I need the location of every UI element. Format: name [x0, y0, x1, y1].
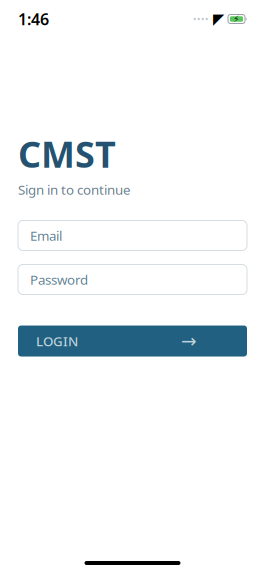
- staticText: ◤: [213, 11, 224, 27]
- staticText: 1:46: [18, 8, 49, 30]
- button[interactable]: Email: [18, 220, 247, 250]
- staticText: ⚡︎: [233, 14, 240, 24]
- button[interactable]: Password: [18, 264, 247, 294]
- staticText: CMST: [18, 130, 116, 178]
- staticText: Password: [30, 271, 88, 288]
- staticText: Sign in to continue: [18, 181, 131, 198]
- staticText: Email: [30, 227, 62, 244]
- staticText: →: [181, 330, 197, 352]
- staticText: LOGIN: [36, 332, 78, 350]
- button[interactable]: LOGIN: [18, 325, 247, 356]
